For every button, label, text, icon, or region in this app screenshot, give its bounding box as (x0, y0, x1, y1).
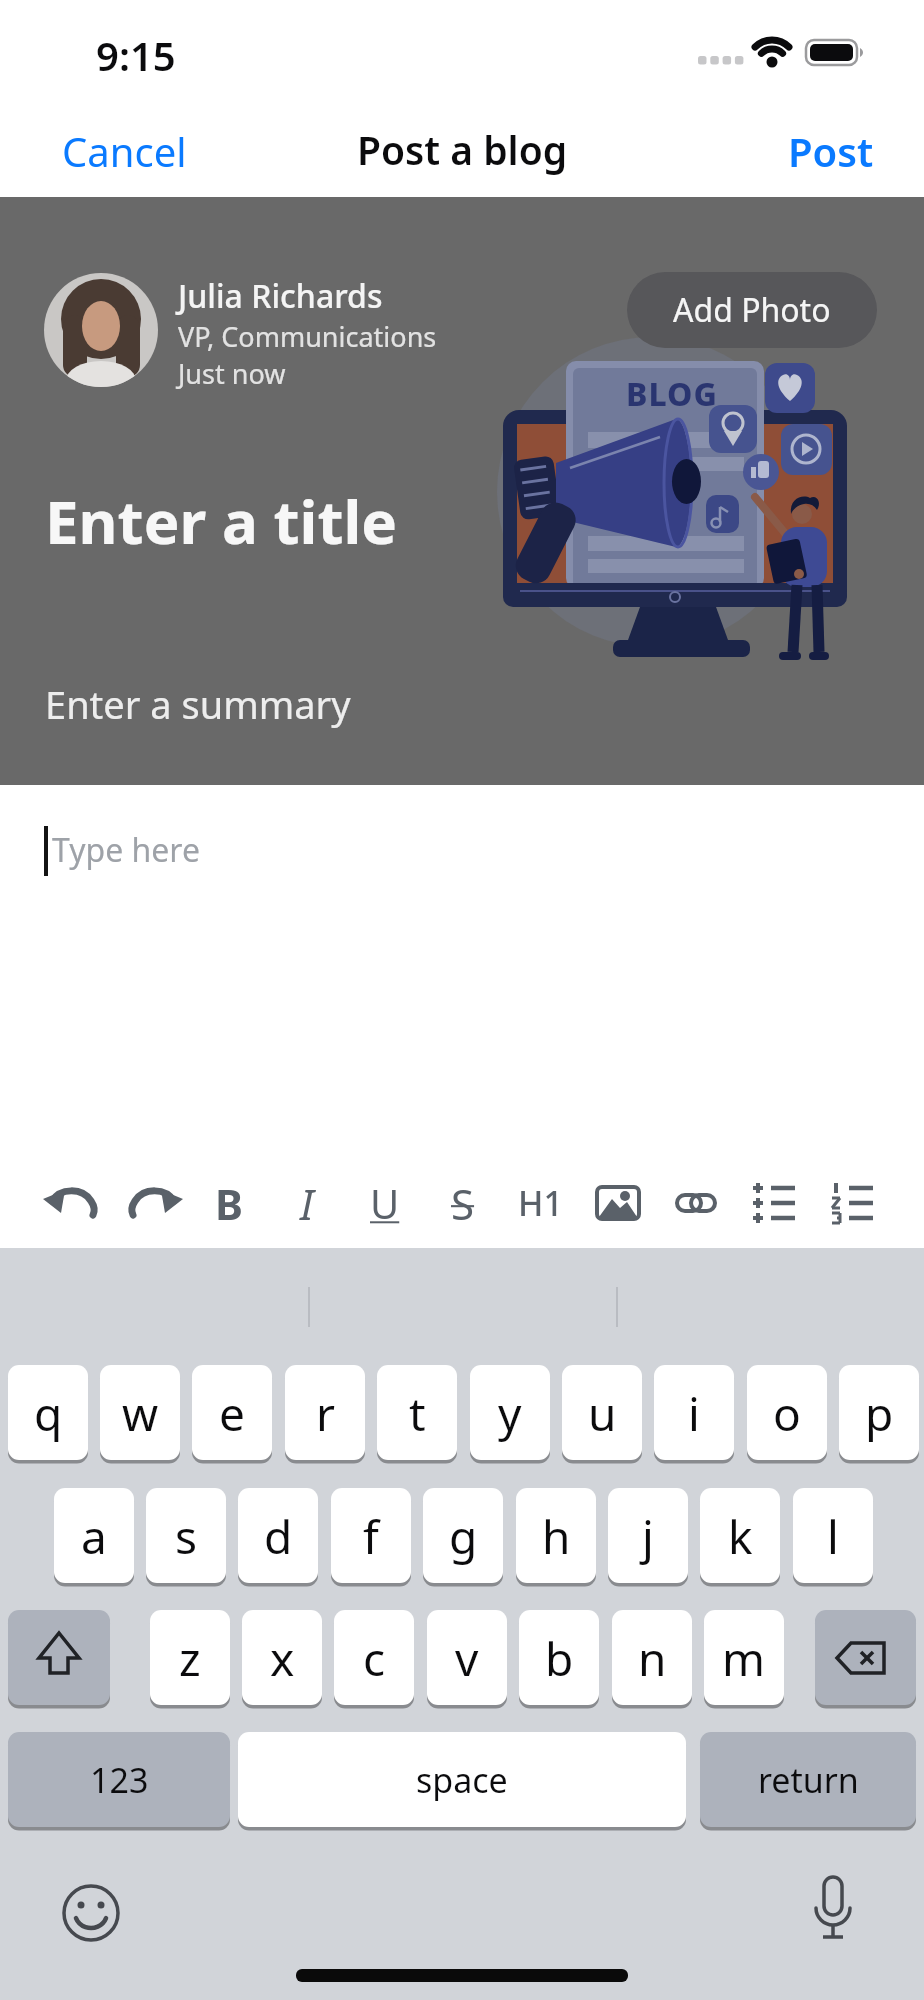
staticText: Post (788, 124, 874, 178)
staticText: Enter a title (45, 480, 398, 562)
button[interactable]: 123 (8, 1732, 230, 1828)
staticText: k (728, 1505, 753, 1568)
staticText: f (363, 1505, 379, 1568)
button[interactable]: h (516, 1488, 596, 1584)
staticText: q (34, 1382, 63, 1445)
button[interactable]: e (192, 1365, 272, 1461)
staticText: t (409, 1382, 426, 1445)
staticText: Cancel (62, 124, 187, 178)
staticText: H1 (518, 1180, 563, 1226)
staticText: u (588, 1382, 617, 1445)
button[interactable]: H1 (511, 1174, 569, 1232)
button[interactable]: c (334, 1610, 414, 1706)
button[interactable]: k (700, 1488, 780, 1584)
button[interactable]: Cancel (40, 118, 200, 180)
staticText: w (122, 1382, 159, 1445)
button[interactable] (822, 1174, 880, 1232)
staticText: 9:15 (96, 28, 176, 82)
staticText: Julia Richards (178, 274, 383, 318)
staticText: h (542, 1505, 571, 1568)
staticText: S (451, 1175, 475, 1232)
button[interactable]: y (470, 1365, 550, 1461)
staticText: space (416, 1757, 508, 1803)
staticText: m (722, 1627, 766, 1690)
staticText: BLOG (626, 372, 718, 416)
button[interactable]: r (285, 1365, 365, 1461)
staticText: o (773, 1382, 801, 1445)
button[interactable]: b (519, 1610, 599, 1706)
staticText: b (545, 1627, 574, 1690)
button[interactable] (8, 1610, 110, 1706)
staticText: Just now (178, 355, 286, 392)
button[interactable]: S (434, 1174, 492, 1232)
button[interactable]: w (100, 1365, 180, 1461)
staticText: g (449, 1505, 478, 1568)
button[interactable]: f (331, 1488, 411, 1584)
button[interactable]: g (423, 1488, 503, 1584)
button[interactable]: o (747, 1365, 827, 1461)
staticText: Add Photo (673, 288, 831, 332)
button[interactable]: t (377, 1365, 457, 1461)
button[interactable]: u (562, 1365, 642, 1461)
button[interactable]: U (356, 1174, 414, 1232)
staticText: z (179, 1627, 201, 1690)
button[interactable]: m (704, 1610, 784, 1706)
button[interactable] (667, 1174, 725, 1232)
button[interactable] (58, 1880, 124, 1946)
button[interactable] (815, 1610, 916, 1706)
staticText: x (270, 1627, 295, 1690)
staticText: s (175, 1505, 198, 1568)
button[interactable]: v (427, 1610, 507, 1706)
staticText: r (316, 1382, 335, 1445)
button[interactable]: Add Photo (627, 272, 877, 348)
staticText: Post a blog (357, 123, 568, 176)
button[interactable]: j (608, 1488, 688, 1584)
staticText: Type here (52, 828, 200, 872)
button[interactable]: l (793, 1488, 873, 1584)
staticText: n (638, 1627, 667, 1690)
button[interactable]: s (146, 1488, 226, 1584)
button[interactable]: z (150, 1610, 230, 1706)
staticText: d (264, 1505, 293, 1568)
button[interactable] (123, 1174, 181, 1232)
button[interactable]: n (612, 1610, 692, 1706)
staticText: 123 (90, 1757, 149, 1803)
staticText: I (300, 1175, 314, 1232)
button[interactable] (45, 1174, 103, 1232)
staticText: c (363, 1627, 386, 1690)
staticText: i (688, 1382, 700, 1445)
staticText: v (455, 1627, 479, 1690)
button[interactable]: a (54, 1488, 134, 1584)
button[interactable]: Post (768, 118, 888, 180)
staticText: a (81, 1505, 107, 1568)
staticText: return (758, 1757, 859, 1803)
staticText: U (370, 1176, 400, 1230)
button[interactable]: I (278, 1174, 336, 1232)
staticText: y (498, 1382, 522, 1445)
button[interactable]: p (839, 1365, 919, 1461)
button[interactable]: space (238, 1732, 686, 1828)
button[interactable] (800, 1880, 866, 1946)
button[interactable]: B (200, 1174, 258, 1232)
button[interactable] (744, 1174, 802, 1232)
button[interactable]: d (238, 1488, 318, 1584)
staticText: VP, Communications (178, 318, 437, 355)
staticText: j (642, 1505, 654, 1568)
button[interactable] (589, 1174, 647, 1232)
button[interactable]: return (700, 1732, 916, 1828)
staticText: l (827, 1505, 839, 1568)
button[interactable]: x (242, 1610, 322, 1706)
staticText: e (219, 1382, 245, 1445)
staticText: B (215, 1175, 243, 1232)
staticText: p (865, 1382, 894, 1445)
button[interactable]: q (8, 1365, 88, 1461)
button[interactable]: i (654, 1365, 734, 1461)
staticText: Enter a summary (45, 678, 351, 730)
